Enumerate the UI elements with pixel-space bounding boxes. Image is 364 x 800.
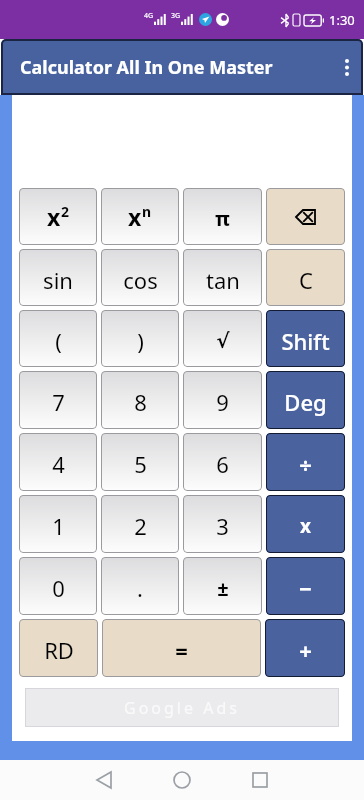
- staticText: +: [299, 635, 312, 665]
- button[interactable]: 6: [183, 433, 262, 491]
- staticText: .: [137, 573, 143, 603]
- button[interactable]: 2: [101, 495, 179, 553]
- staticText: Google Ads: [124, 697, 240, 719]
- staticText: √: [216, 329, 230, 352]
- button[interactable]: =: [102, 619, 261, 677]
- button[interactable]: ): [101, 310, 179, 367]
- button[interactable]: ÷: [266, 433, 345, 491]
- staticText: tan: [206, 265, 240, 295]
- staticText: Shift: [281, 326, 330, 356]
- staticText: Deg: [284, 387, 327, 417]
- button[interactable]: C: [266, 249, 345, 306]
- staticText: −: [299, 573, 312, 603]
- staticText: RD: [44, 635, 74, 665]
- button[interactable]: tan: [183, 249, 262, 306]
- button[interactable]: More options: [331, 39, 363, 95]
- staticText: x: [47, 201, 61, 232]
- button[interactable]: π: [183, 188, 262, 245]
- staticText: 1: [52, 511, 65, 541]
- staticText: (: [55, 326, 62, 356]
- button[interactable]: −: [266, 557, 345, 615]
- staticText: =: [175, 635, 188, 665]
- staticText: ): [137, 326, 144, 356]
- button[interactable]: 7: [19, 371, 97, 429]
- button[interactable]: x: [266, 495, 345, 553]
- staticText: 9: [216, 387, 229, 417]
- staticText: Calculator All In One Master: [20, 55, 273, 80]
- button[interactable]: 1: [19, 495, 97, 553]
- staticText: 4: [52, 449, 65, 479]
- staticText: 4G: [144, 11, 154, 21]
- staticText: ÷: [299, 449, 312, 479]
- staticText: 2: [61, 202, 70, 221]
- staticText: 6: [216, 449, 229, 479]
- staticText: x: [300, 513, 311, 539]
- button[interactable]: 4: [19, 433, 97, 491]
- button[interactable]: Shift: [266, 310, 345, 367]
- button[interactable]: 5: [101, 433, 179, 491]
- staticText: cos: [123, 265, 158, 295]
- button[interactable]: RD: [19, 619, 98, 677]
- button[interactable]: x: [101, 188, 179, 245]
- staticText: n: [142, 202, 152, 221]
- button[interactable]: Deg: [266, 371, 345, 429]
- button[interactable]: cos: [101, 249, 179, 306]
- staticText: 8: [134, 387, 147, 417]
- staticText: π: [215, 205, 230, 232]
- button[interactable]: 3: [183, 495, 262, 553]
- button[interactable]: x: [19, 188, 97, 245]
- button[interactable]: [266, 188, 345, 245]
- staticText: sin: [43, 265, 73, 295]
- button[interactable]: .: [101, 557, 179, 615]
- staticText: 3: [216, 511, 229, 541]
- button[interactable]: Google Ads: [25, 688, 339, 727]
- button[interactable]: sin: [19, 249, 97, 306]
- button[interactable]: √: [183, 310, 262, 367]
- staticText: 3G: [171, 11, 181, 21]
- button[interactable]: (: [19, 310, 97, 367]
- button[interactable]: 9: [183, 371, 262, 429]
- staticText: x: [128, 201, 142, 232]
- button[interactable]: +: [265, 619, 345, 677]
- staticText: 0: [52, 573, 65, 603]
- button[interactable]: 8: [101, 371, 179, 429]
- staticText: 5: [134, 449, 147, 479]
- button[interactable]: ±: [183, 557, 262, 615]
- staticText: 1:30: [329, 11, 355, 29]
- button[interactable]: 0: [19, 557, 97, 615]
- staticText: ±: [217, 575, 229, 602]
- staticText: 7: [52, 387, 65, 417]
- staticText: C: [299, 265, 313, 295]
- staticText: 2: [134, 511, 147, 541]
